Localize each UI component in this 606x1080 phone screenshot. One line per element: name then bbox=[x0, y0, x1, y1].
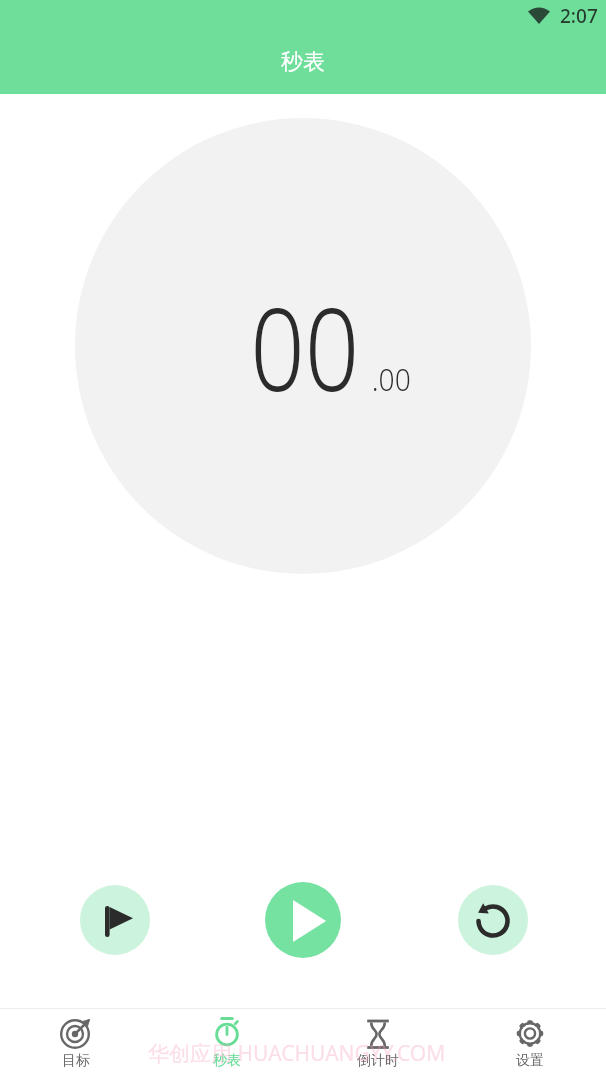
staticText: 华创应用 HUACHUANGYY.COM bbox=[148, 1039, 446, 1068]
button[interactable]: 设置 bbox=[454, 1008, 606, 1080]
button[interactable] bbox=[80, 885, 150, 955]
staticText: .00 bbox=[372, 357, 411, 401]
button[interactable]: 倒计时 bbox=[302, 1008, 454, 1080]
button[interactable]: 目标 bbox=[0, 1008, 151, 1080]
staticText: 2:07 bbox=[560, 3, 598, 29]
button[interactable]: 秒表 bbox=[151, 1008, 302, 1080]
staticText: 秒表 bbox=[281, 48, 325, 76]
staticText: 00 bbox=[250, 268, 360, 425]
button[interactable] bbox=[458, 885, 528, 955]
staticText: 倒计时 bbox=[357, 1052, 399, 1070]
staticText: 目标 bbox=[62, 1052, 90, 1070]
button[interactable] bbox=[265, 882, 341, 958]
staticText: 设置 bbox=[516, 1052, 544, 1070]
staticText: 秒表 bbox=[213, 1052, 241, 1070]
